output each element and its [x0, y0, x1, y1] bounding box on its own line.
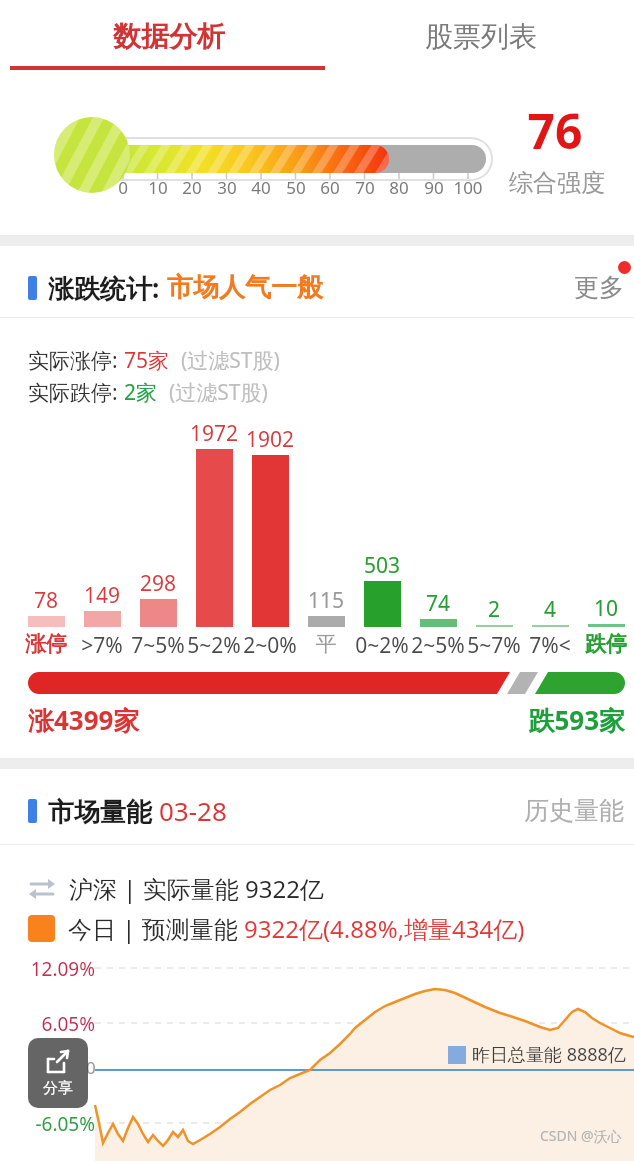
- staticText: 4: [522, 595, 578, 624]
- staticText: 9322亿(4.88%,增量434亿): [244, 912, 525, 945]
- staticText: 综合强度: [498, 168, 616, 198]
- staticText: 70: [343, 176, 387, 199]
- button[interactable]: 数据分析: [0, 0, 317, 72]
- staticText: 实际跌停:: [28, 378, 124, 407]
- staticText: 149: [74, 581, 130, 610]
- staticText: 涨4399家: [28, 702, 140, 738]
- staticText: 平: [298, 631, 354, 657]
- staticText: 1972: [186, 419, 242, 448]
- staticText: 更多: [574, 272, 624, 303]
- staticText: 75家: [124, 346, 170, 375]
- staticText: 数据分析: [113, 19, 225, 54]
- staticText: 2: [466, 595, 522, 624]
- staticText: 跌593家: [420, 702, 625, 738]
- staticText: 298: [130, 569, 186, 598]
- staticText: 115: [298, 586, 354, 615]
- staticText: 市场量能: [48, 793, 159, 829]
- staticText: 0: [86, 1056, 106, 1079]
- staticText: (过滤ST股): [158, 378, 268, 407]
- button[interactable]: 股票列表: [317, 0, 634, 72]
- staticText: 涨跌统计:: [48, 270, 167, 306]
- staticText: 76: [500, 98, 610, 163]
- staticText: 0: [101, 176, 145, 199]
- staticText: 2~0%: [242, 631, 298, 660]
- staticText: 历史量能: [524, 795, 624, 826]
- staticText: 10: [578, 594, 634, 623]
- staticText: 实际涨停:: [28, 346, 124, 375]
- staticText: (过滤ST股): [170, 346, 280, 375]
- staticText: 40: [239, 176, 283, 199]
- staticText: 涨停: [18, 631, 74, 657]
- staticText: -6.05%: [12, 1111, 95, 1137]
- staticText: 30: [205, 176, 249, 199]
- staticText: 80: [377, 176, 421, 199]
- staticText: 跌停: [578, 631, 634, 657]
- staticText: 股票列表: [425, 19, 537, 54]
- button[interactable]: 历史量能: [524, 795, 624, 826]
- staticText: 10: [136, 176, 180, 199]
- staticText: 5~2%: [186, 631, 242, 660]
- staticText: 12.09%: [20, 956, 95, 982]
- staticText: >7%: [74, 631, 130, 660]
- staticText: 90: [412, 176, 456, 199]
- staticText: 昨日总量能 8888亿: [472, 1042, 626, 1067]
- staticText: 分享: [43, 1079, 73, 1098]
- staticText: 100: [446, 176, 490, 199]
- staticText: 0~2%: [354, 631, 410, 660]
- staticText: 2家: [124, 378, 158, 407]
- staticText: 市场人气一般: [167, 271, 323, 304]
- button[interactable]: 更多: [574, 272, 624, 303]
- staticText: 沪深 | 实际量能 9322亿: [69, 872, 324, 905]
- staticText: 5~7%: [466, 631, 522, 660]
- staticText: 2~5%: [410, 631, 466, 660]
- staticText: 20: [170, 176, 214, 199]
- staticText: 7~5%: [130, 631, 186, 660]
- staticText: 7%<: [522, 631, 578, 660]
- staticText: 74: [410, 589, 466, 618]
- staticText: 6.05%: [20, 1011, 95, 1037]
- staticText: 503: [354, 551, 410, 580]
- staticText: 60: [308, 176, 352, 199]
- staticText: 03-28: [159, 793, 227, 828]
- staticText: CSDN @沃心: [540, 1126, 622, 1145]
- staticText: 50: [274, 176, 318, 199]
- staticText: 78: [18, 586, 74, 615]
- staticText: 1902: [242, 425, 298, 454]
- button[interactable]: 分享: [28, 1038, 88, 1108]
- staticText: 今日 | 预测量能: [68, 912, 244, 945]
